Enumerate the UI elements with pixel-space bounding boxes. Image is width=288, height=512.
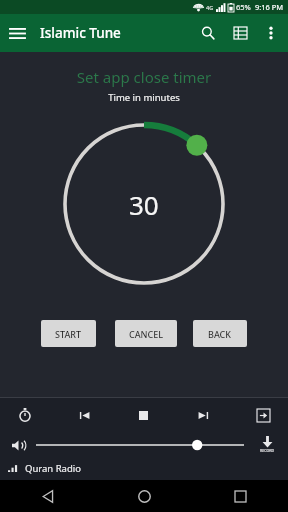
button[interactable]: View list — [224, 17, 256, 49]
button[interactable]: Back — [0, 480, 96, 512]
button[interactable]: Previous — [69, 400, 99, 430]
button[interactable]: Next — [188, 400, 218, 430]
staticText: RECORD — [260, 448, 275, 453]
button[interactable]: Exit — [248, 400, 278, 430]
button[interactable]: Recent apps — [192, 480, 288, 512]
staticText: 30 — [129, 187, 159, 222]
staticText: Islamic Tune — [40, 24, 121, 42]
button[interactable]: Open navigation drawer — [0, 16, 34, 50]
button[interactable]: Record — [252, 431, 282, 458]
button[interactable] — [36, 435, 244, 455]
staticText: BACK — [208, 328, 232, 340]
staticText: Quran Radio — [25, 462, 81, 475]
button[interactable]: Volume — [6, 433, 30, 457]
staticText: Set app close timer — [0, 67, 288, 87]
staticText: 4G — [206, 4, 214, 11]
button[interactable]: More options — [256, 18, 286, 48]
staticText: 65% — [236, 2, 251, 12]
button[interactable]: Stop — [128, 400, 158, 430]
button[interactable]: Sleep timer — [10, 400, 40, 430]
button[interactable]: START — [41, 320, 96, 347]
staticText: Time in minutes — [0, 91, 288, 104]
button[interactable]: Home — [96, 480, 192, 512]
staticText: START — [55, 328, 82, 340]
button[interactable]: Search — [192, 17, 224, 49]
button[interactable]: BACK — [193, 320, 247, 347]
staticText: CANCEL — [129, 328, 164, 340]
button[interactable]: CANCEL — [115, 320, 177, 347]
staticText: 9:16 PM — [255, 2, 284, 12]
